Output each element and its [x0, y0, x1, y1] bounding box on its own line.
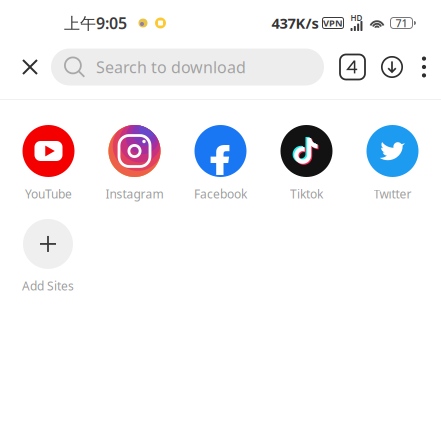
button[interactable]: More	[411, 46, 437, 87]
staticText: Twitter	[373, 186, 411, 202]
button[interactable]: Tiktok	[263, 125, 349, 202]
button[interactable]: Twitter	[349, 125, 435, 202]
button[interactable]: YouTube	[5, 125, 91, 202]
button[interactable]: Tabs, 4 open	[332, 46, 373, 87]
staticText: HD	[350, 13, 362, 23]
button[interactable]: Add Sites	[5, 219, 91, 294]
staticText: 437K/s	[271, 13, 318, 33]
button[interactable]: Downloads	[373, 46, 411, 87]
button[interactable]: Search to download	[51, 48, 324, 85]
button[interactable]: Close	[9, 46, 51, 88]
staticText: YouTube	[25, 186, 72, 202]
button[interactable]: Instagram	[91, 125, 177, 202]
staticText: Add Sites	[22, 278, 74, 294]
staticText: Facebook	[194, 186, 247, 202]
staticText: 71	[395, 16, 407, 30]
staticText: VPN	[323, 17, 343, 29]
staticText: Tiktok	[290, 186, 323, 202]
staticText: Search to download	[96, 56, 246, 78]
staticText: 上午9:05	[64, 12, 127, 34]
button[interactable]: Facebook	[177, 125, 263, 202]
staticText: Instagram	[105, 186, 163, 202]
